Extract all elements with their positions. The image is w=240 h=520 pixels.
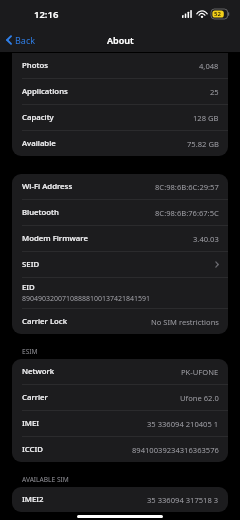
button[interactable]: Photos (12, 53, 228, 79)
staticText: 75.82 GB (187, 139, 219, 149)
button[interactable]: EID (12, 278, 228, 309)
button[interactable]: IMEI (12, 411, 228, 437)
staticText: EID (22, 282, 35, 293)
staticText: Available (22, 138, 56, 149)
staticText: Bluetooth (22, 207, 59, 218)
button[interactable]: IMEI2 (12, 487, 228, 512)
staticText: 89049032007108888100137421841591 (22, 294, 151, 304)
staticText: Ufone 62.0 (180, 393, 219, 403)
button[interactable]: Modem Firmware (12, 226, 228, 252)
staticText: ICCID (22, 444, 43, 455)
button[interactable]: SEID (12, 252, 228, 278)
staticText: Capacity (22, 112, 54, 123)
staticText: Back (15, 34, 36, 46)
staticText: 12:16 (34, 8, 59, 21)
staticText: Modem Firmware (22, 233, 88, 244)
staticText: Applications (22, 86, 68, 97)
staticText: Wi-Fi Address (22, 181, 73, 192)
staticText: PK-UFONE (181, 367, 219, 377)
staticText: No SIM restrictions (151, 317, 219, 327)
staticText: About (107, 34, 134, 46)
button[interactable]: Carrier (12, 385, 228, 411)
button[interactable]: Capacity (12, 105, 228, 131)
staticText: IMEI (22, 418, 40, 429)
staticText: 35 336094 210405 1 (147, 419, 219, 429)
button[interactable]: Wi-Fi Address (12, 174, 228, 200)
staticText: 128 GB (193, 113, 219, 123)
staticText: Photos (22, 60, 48, 71)
button[interactable]: Back (0, 30, 44, 50)
staticText: Carrier Lock (22, 316, 68, 327)
staticText: 8C:98:6B:76:67:5C (155, 208, 219, 218)
button[interactable]: Available (12, 131, 228, 156)
staticText: Carrier (22, 392, 48, 403)
staticText: 52 (214, 10, 221, 18)
staticText: 8C:98:6B:6C:29:57 (155, 182, 219, 192)
button[interactable]: ICCID (12, 437, 228, 462)
staticText: ESIM (22, 347, 38, 356)
other: Open SEID (215, 261, 219, 268)
button[interactable]: Bluetooth (12, 200, 228, 226)
staticText: 25 (210, 87, 219, 97)
staticText: 89410039234316363576 (132, 445, 219, 455)
staticText: AVAILABLE SIM (22, 475, 69, 484)
staticText: IMEI2 (22, 494, 44, 505)
button[interactable]: Applications (12, 79, 228, 105)
staticText: Network (22, 366, 55, 377)
staticText: SEID (22, 259, 40, 270)
staticText: 4,048 (199, 61, 219, 71)
staticText: 35 336094 317518 3 (147, 495, 219, 505)
button[interactable]: Carrier Lock (12, 309, 228, 334)
button[interactable]: Network (12, 359, 228, 385)
staticText: 3.40.03 (193, 234, 219, 244)
